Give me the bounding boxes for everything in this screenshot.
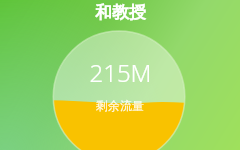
- button[interactable]: [0, 0, 240, 150]
- staticText: 215M: [89, 56, 152, 89]
- staticText: 剩余流量: [96, 98, 144, 113]
- button[interactable]: 和教授: [95, 2, 146, 23]
